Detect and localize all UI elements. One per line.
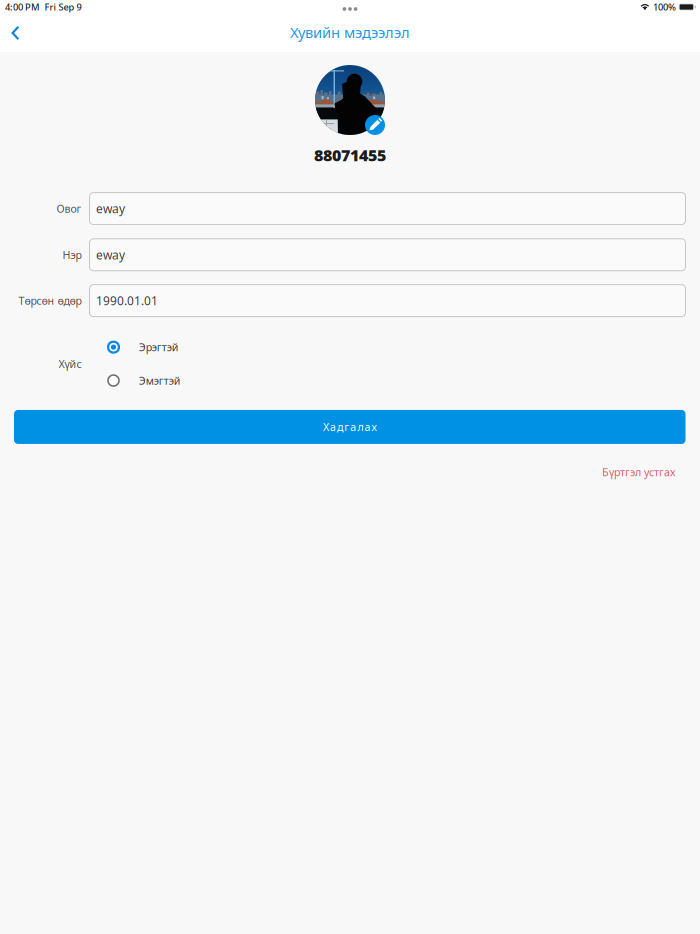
- staticText: Овог: [56, 201, 81, 216]
- button[interactable]: 1990.01.01: [89, 285, 685, 317]
- button[interactable]: Бүртгэл устгах: [594, 459, 683, 485]
- staticText: eway: [96, 247, 125, 263]
- staticText: 88071455: [314, 144, 386, 166]
- button[interactable]: Эрэгтэй: [107, 336, 685, 358]
- staticText: 1990.01.01: [96, 293, 158, 309]
- staticText: Fri Sep 9: [44, 1, 81, 13]
- staticText: Бүртгэл устгах: [602, 465, 675, 479]
- button[interactable]: Хадгалах: [14, 410, 685, 444]
- staticText: Төрсөн өдөр: [18, 294, 81, 308]
- button[interactable]: Change photo: [365, 115, 385, 135]
- staticText: Эрэгтэй: [139, 340, 179, 354]
- button[interactable]: eway: [89, 239, 685, 271]
- staticText: Хадгалах: [323, 420, 377, 434]
- button[interactable]: Back: [0, 20, 33, 52]
- staticText: Хүйс: [58, 357, 81, 371]
- button[interactable]: eway: [89, 192, 685, 224]
- staticText: eway: [96, 201, 125, 216]
- staticText: 100%: [653, 1, 676, 13]
- button[interactable]: Эмэгтэй: [107, 369, 685, 391]
- staticText: Эмэгтэй: [139, 373, 181, 388]
- staticText: Хувийн мэдээлэл: [290, 22, 410, 42]
- staticText: 4:00 PM: [5, 1, 40, 13]
- staticText: Нэр: [62, 248, 81, 262]
